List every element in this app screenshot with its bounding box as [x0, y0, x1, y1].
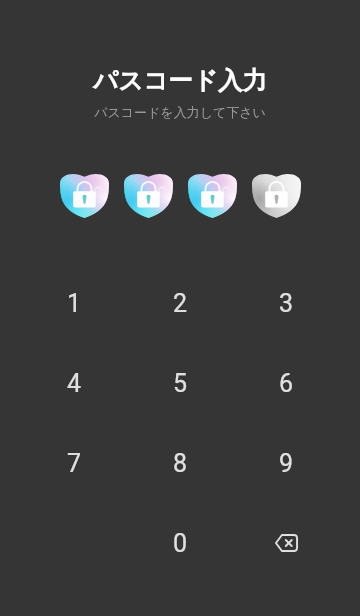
staticText: 2: [173, 289, 188, 318]
button[interactable]: 6: [233, 343, 339, 423]
button[interactable]: 3: [233, 263, 339, 343]
button[interactable]: 1: [21, 263, 127, 343]
button[interactable]: Backspace: [233, 503, 339, 583]
staticText: 0: [173, 529, 188, 558]
staticText: 9: [279, 449, 294, 478]
button[interactable]: 5: [127, 343, 233, 423]
staticText: パスコードを入力して下さい: [94, 104, 266, 120]
staticText: 1: [67, 289, 82, 318]
staticText: 6: [279, 369, 294, 398]
button[interactable]: 4: [21, 343, 127, 423]
button[interactable]: 2: [127, 263, 233, 343]
button[interactable]: 9: [233, 423, 339, 503]
staticText: 4: [67, 369, 82, 398]
staticText: 8: [173, 449, 188, 478]
staticText: 5: [173, 369, 188, 398]
staticText: パスコード入力: [93, 65, 267, 96]
button[interactable]: 0: [127, 503, 233, 583]
button[interactable]: 7: [21, 423, 127, 503]
button[interactable]: 8: [127, 423, 233, 503]
staticText: 3: [279, 289, 294, 318]
staticText: 7: [67, 449, 82, 478]
